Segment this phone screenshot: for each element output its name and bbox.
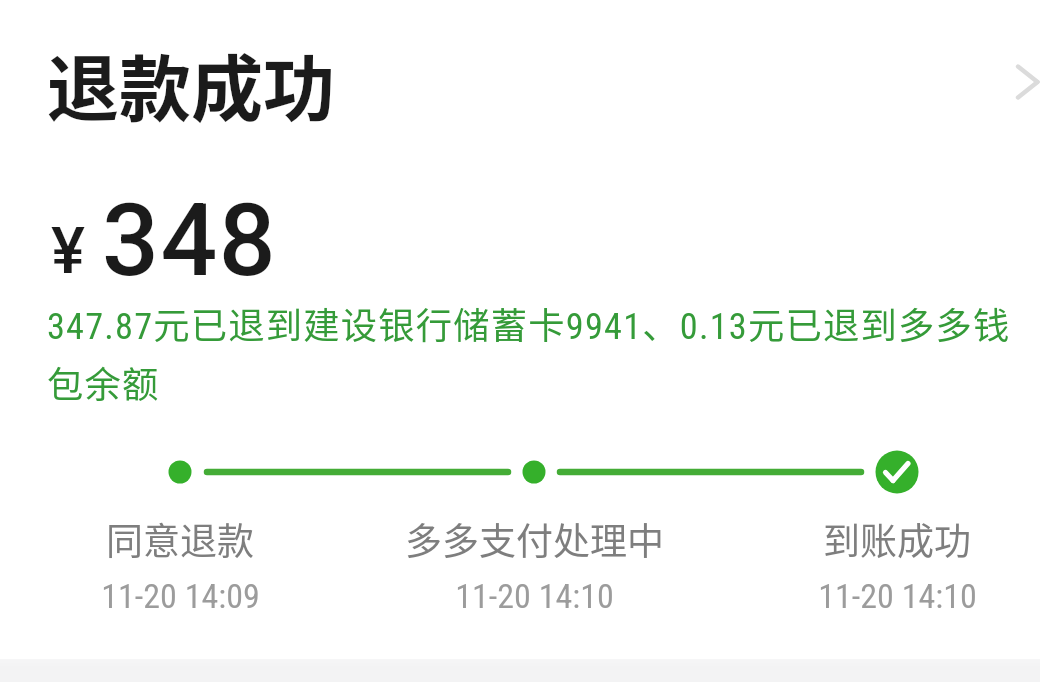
staticText: 同意退款 [106, 523, 254, 563]
staticText: 退款成功 [47, 51, 336, 131]
staticText: ¥ [51, 214, 85, 289]
staticText: 11-20 14:10 [455, 579, 614, 615]
staticText: 11-20 14:09 [101, 579, 260, 615]
staticText: 到账成功 [823, 523, 971, 563]
button[interactable]: 到账成功 [737, 523, 1040, 615]
button[interactable]: View refund details [984, 46, 1040, 118]
button[interactable]: 同意退款 [20, 523, 340, 615]
staticText: 11-20 14:10 [818, 579, 977, 615]
button[interactable]: 多多支付处理中 [374, 523, 694, 615]
staticText: 347.87元已退到建设银行储蓄卡9941、0.13元已退到多多钱包余额 [47, 293, 1022, 410]
staticText: 348 [102, 182, 278, 299]
button[interactable]: 退款成功 [0, 18, 1040, 136]
staticText: 多多支付处理中 [405, 523, 664, 563]
